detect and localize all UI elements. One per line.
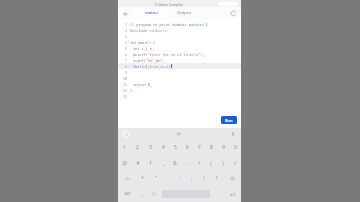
button[interactable]: 8 xyxy=(205,140,217,155)
button[interactable]: Output xyxy=(168,9,201,17)
staticText: =\< xyxy=(125,176,130,180)
button[interactable]: 1 xyxy=(118,21,241,27)
button[interactable]: _ xyxy=(157,155,169,170)
staticText: printf("enter the no of lines\n"); xyxy=(133,52,205,57)
staticText: scanf("%d",&n); xyxy=(133,58,165,63)
staticText: 2 xyxy=(136,144,139,151)
button[interactable]: 12 xyxy=(118,87,241,93)
button[interactable]: 9 xyxy=(217,140,229,155)
staticText: 5 xyxy=(125,46,127,50)
staticText: ( xyxy=(210,160,212,166)
button[interactable]: ; xyxy=(186,170,198,186)
staticText: ! xyxy=(203,175,205,181)
button[interactable]: 7 xyxy=(118,57,241,63)
button[interactable]: & xyxy=(169,155,181,170)
button[interactable]: * xyxy=(136,170,149,186)
button[interactable]: ? xyxy=(210,170,222,186)
staticText: + xyxy=(198,160,201,166)
button[interactable]: 3 xyxy=(144,140,157,155)
staticText: 4 xyxy=(125,40,127,44)
staticText: 9 xyxy=(222,144,225,151)
button[interactable]: Backspace xyxy=(224,170,241,186)
button[interactable]: ) xyxy=(217,155,229,170)
button[interactable]: Enter xyxy=(223,186,241,202)
button[interactable]: @ xyxy=(118,155,131,170)
button[interactable]: 5 xyxy=(169,140,181,155)
button[interactable]: 6 xyxy=(181,140,193,155)
button[interactable]: ( xyxy=(205,155,217,170)
staticText: ) xyxy=(222,160,224,166)
button[interactable]: 5 xyxy=(118,45,241,51)
button[interactable]: =\< xyxy=(118,170,136,186)
staticText: 2 xyxy=(125,28,127,32)
button[interactable]: Emoji keyboard xyxy=(148,186,160,202)
button[interactable]: 4 xyxy=(118,39,241,45)
staticText: 3 xyxy=(149,144,152,151)
staticText: int main() { xyxy=(130,40,156,45)
button[interactable]: main.c xyxy=(135,9,168,17)
staticText: _ xyxy=(162,160,165,166)
staticText: 5 xyxy=(174,144,177,151)
button[interactable]: Back xyxy=(121,9,130,18)
button[interactable]: 2 xyxy=(131,140,144,155)
button[interactable]: Voice input xyxy=(229,130,237,138)
button[interactable]: 4 xyxy=(157,140,169,155)
staticText: - xyxy=(186,160,188,166)
staticText: 12 xyxy=(123,88,127,92)
staticText: 13 xyxy=(123,94,127,98)
button[interactable]: ABC xyxy=(118,186,137,202)
staticText: , xyxy=(142,191,144,197)
button[interactable]: 8 xyxy=(118,63,241,69)
staticText: ? xyxy=(215,175,218,181)
staticText: 6 xyxy=(125,52,127,56)
staticText: . xyxy=(217,191,219,197)
staticText: 1 xyxy=(123,144,126,151)
button[interactable]: / xyxy=(229,155,241,170)
staticText: 8 xyxy=(210,144,213,151)
staticText: 11 xyxy=(123,82,127,86)
staticText: for(i=1;i<=n;i++){ xyxy=(133,64,171,69)
staticText: ABC xyxy=(124,192,131,196)
staticText: // program to print numbers pattern 4 xyxy=(130,22,208,27)
staticText: 10 xyxy=(123,76,127,80)
staticText: " xyxy=(155,175,157,181)
button[interactable]: 0 xyxy=(229,140,241,155)
staticText: 7 xyxy=(125,58,127,62)
staticText: / xyxy=(234,160,236,166)
button[interactable]: ! xyxy=(198,170,210,186)
staticText: #include <stdio.h> xyxy=(130,28,168,33)
staticText: C Online Compiler xyxy=(155,2,184,6)
button[interactable]: 2 xyxy=(118,27,241,33)
button[interactable]: 13 xyxy=(118,93,241,99)
button[interactable]: 11 xyxy=(118,81,241,87)
button[interactable]: 7 xyxy=(193,140,205,155)
button[interactable]: 10 xyxy=(118,75,241,81)
button[interactable]: Clipboard xyxy=(175,130,183,138)
staticText: Run xyxy=(225,118,233,123)
button[interactable]: Run xyxy=(221,116,237,124)
button[interactable]: Expand toolbar xyxy=(122,130,130,138)
button[interactable]: + xyxy=(193,155,205,170)
button[interactable]: Refresh xyxy=(229,9,238,18)
button[interactable]: 6 xyxy=(118,51,241,57)
button[interactable]: ₹ xyxy=(144,155,157,170)
staticText: int i,j,n; xyxy=(133,46,154,51)
staticText: & xyxy=(173,160,177,166)
staticText: ₹ xyxy=(149,160,152,166)
button[interactable]: " xyxy=(149,170,162,186)
staticText: * xyxy=(141,175,144,181)
button[interactable]: 1 xyxy=(118,140,131,155)
staticText: 1 xyxy=(125,22,127,26)
staticText: 4 xyxy=(162,144,165,151)
button[interactable]: # xyxy=(131,155,144,170)
staticText: : xyxy=(179,175,181,181)
